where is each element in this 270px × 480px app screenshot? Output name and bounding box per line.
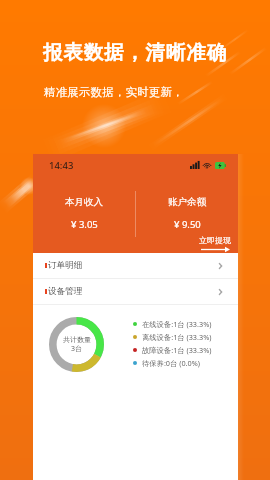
- staticText: 立即提现: [199, 235, 231, 245]
- other: Status icons: [190, 161, 226, 169]
- staticText: 本月收入: [65, 196, 103, 208]
- button[interactable]: 订单明细: [33, 253, 238, 278]
- staticText: 故障设备:1台 (33.3%): [142, 345, 212, 355]
- button[interactable]: 设备管理: [33, 279, 238, 304]
- staticText: 14:43: [49, 159, 74, 172]
- staticText: 设备管理: [48, 286, 83, 297]
- staticText: 精准展示数据，实时更新，: [44, 85, 184, 99]
- staticText: 报表数据，清晰准确: [0, 40, 270, 65]
- button[interactable]: 立即提现: [199, 235, 231, 252]
- staticText: ¥ 9.50: [174, 218, 201, 231]
- staticText: 待保养:0台 (0.0%): [142, 358, 200, 368]
- staticText: 离线设备:1台 (33.3%): [142, 332, 212, 342]
- staticText: ¥ 3.05: [71, 218, 98, 231]
- staticText: 3台: [71, 344, 83, 354]
- staticText: 共计数量: [63, 335, 91, 344]
- staticText: 订单明细: [48, 260, 83, 271]
- staticText: 在线设备:1台 (33.3%): [142, 319, 212, 329]
- staticText: 账户余额: [168, 196, 206, 208]
